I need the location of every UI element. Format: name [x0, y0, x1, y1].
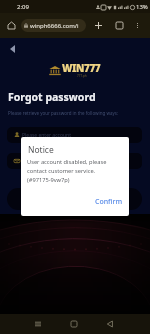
button[interactable]: Home	[66, 316, 82, 332]
button[interactable]: Please enter account	[7, 127, 142, 143]
staticText: 13%	[136, 3, 148, 11]
staticText: WIN777	[62, 61, 101, 75]
button[interactable]: Back	[102, 316, 118, 332]
button[interactable]: Confirm	[92, 195, 126, 209]
button[interactable]: Recent apps	[30, 316, 46, 332]
staticText: winph6666.com/i	[30, 22, 79, 30]
button[interactable]	[7, 188, 142, 210]
button[interactable]: winph6666.com/i	[21, 19, 86, 32]
staticText: Notice	[28, 144, 54, 156]
staticText: User account disabled, please contact cu…	[27, 158, 119, 184]
staticText: 777.ph	[77, 74, 87, 78]
staticText: Confirm	[95, 197, 123, 207]
staticText: Forgot password	[8, 90, 96, 104]
button[interactable]: Please enter email	[7, 153, 142, 169]
staticText: Please enter account	[22, 132, 71, 139]
staticText: Please enter email	[22, 158, 66, 165]
button[interactable]: Back	[5, 41, 20, 56]
button[interactable]: More options	[129, 17, 145, 33]
button[interactable]: Tabs	[111, 17, 127, 33]
button[interactable]: New tab	[90, 17, 106, 33]
staticText: Please retrieve your password in the fol…	[8, 110, 119, 116]
staticText: 2:09	[17, 3, 29, 11]
button[interactable]: Home	[3, 17, 19, 33]
